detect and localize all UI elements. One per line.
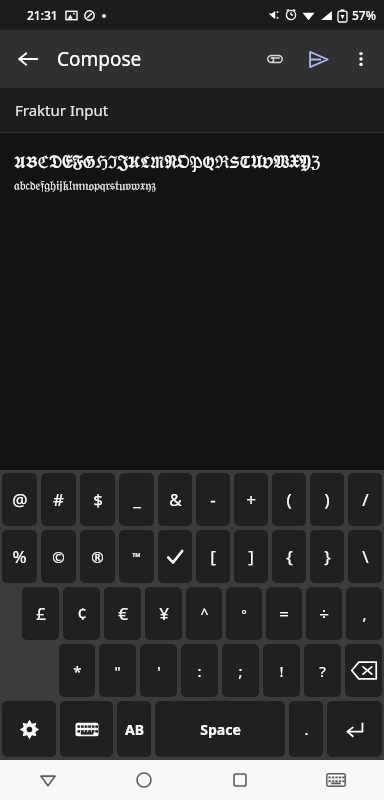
staticText: { bbox=[286, 545, 293, 568]
staticText: ' bbox=[157, 661, 161, 681]
staticText: # bbox=[53, 488, 64, 511]
staticText: 57% bbox=[352, 7, 376, 23]
button[interactable]: [ bbox=[196, 530, 230, 583]
button[interactable]: Send bbox=[296, 37, 340, 81]
button[interactable]: ¢ bbox=[63, 587, 100, 640]
staticText: = bbox=[279, 602, 289, 625]
staticText: ! bbox=[279, 661, 284, 681]
staticText: ] bbox=[248, 545, 254, 568]
button[interactable]: # bbox=[41, 473, 76, 526]
staticText: AB bbox=[125, 720, 144, 739]
button[interactable]: Switch keyboard bbox=[60, 701, 113, 757]
button[interactable]: & bbox=[158, 473, 192, 526]
staticText: : bbox=[197, 661, 202, 681]
staticText: \ bbox=[362, 545, 369, 568]
staticText: £ bbox=[36, 602, 46, 625]
staticText: ^ bbox=[200, 604, 209, 623]
button[interactable]: ) bbox=[310, 473, 344, 526]
staticText: } bbox=[324, 545, 331, 568]
button[interactable]: ¥ bbox=[145, 587, 182, 640]
button[interactable]: @ bbox=[2, 473, 37, 526]
staticText: ÷ bbox=[319, 602, 329, 625]
button[interactable]: ÷ bbox=[306, 587, 342, 640]
staticText: ) bbox=[324, 488, 330, 511]
button[interactable]: ] bbox=[234, 530, 268, 583]
button[interactable]: ° bbox=[226, 587, 262, 640]
staticText: _ bbox=[133, 488, 141, 511]
button[interactable]: ' bbox=[140, 644, 177, 697]
button[interactable]: Enter bbox=[327, 701, 382, 757]
button[interactable]: Attach bbox=[254, 38, 296, 80]
button[interactable]: Back bbox=[8, 39, 48, 79]
button[interactable]: Fraktur Input bbox=[0, 88, 384, 132]
staticText: ( bbox=[286, 488, 292, 511]
button[interactable]: ^ bbox=[186, 587, 222, 640]
button[interactable]: © bbox=[41, 530, 76, 583]
staticText: & bbox=[169, 488, 182, 511]
staticText: 𝔞𝔟𝔠𝔡𝔢𝔣𝔤𝔥𝔦𝔧𝔨𝔩𝔪𝔫𝔬𝔭𝔮𝔯𝔰𝔱𝔲𝔳𝔴𝔵𝔶𝔷 bbox=[14, 180, 156, 193]
button[interactable]: Home bbox=[96, 760, 192, 800]
staticText: Space bbox=[200, 720, 241, 739]
button[interactable]: \ bbox=[348, 530, 382, 583]
button[interactable]: , bbox=[346, 587, 382, 640]
button[interactable]: % bbox=[2, 530, 37, 583]
button[interactable]: : bbox=[181, 644, 218, 697]
button[interactable]: Settings bbox=[2, 701, 56, 757]
staticText: , bbox=[362, 604, 367, 624]
button[interactable]: AB bbox=[117, 701, 151, 757]
button[interactable]: " bbox=[99, 644, 136, 697]
staticText: - bbox=[210, 488, 216, 511]
button[interactable]: { bbox=[272, 530, 306, 583]
staticText: $ bbox=[93, 488, 103, 511]
button[interactable]: Back bbox=[0, 760, 96, 800]
staticText: 21:31 bbox=[27, 7, 58, 23]
button[interactable]: Backspace bbox=[345, 644, 382, 697]
button[interactable]: + bbox=[234, 473, 268, 526]
staticText: / bbox=[362, 488, 369, 511]
staticText: © bbox=[52, 547, 65, 567]
staticText: ™ bbox=[132, 549, 141, 564]
button[interactable]: $ bbox=[80, 473, 115, 526]
button[interactable]: ( bbox=[272, 473, 306, 526]
button[interactable]: / bbox=[348, 473, 382, 526]
button[interactable]: ! bbox=[263, 644, 300, 697]
staticText: . bbox=[304, 719, 309, 739]
staticText: € bbox=[118, 602, 128, 625]
button[interactable]: } bbox=[310, 530, 344, 583]
button[interactable]: ® bbox=[80, 530, 115, 583]
button[interactable]: ™ bbox=[119, 530, 154, 583]
staticText: @ bbox=[12, 488, 28, 511]
button[interactable]: . bbox=[289, 701, 323, 757]
staticText: ¥ bbox=[159, 602, 169, 625]
button[interactable]: = bbox=[266, 587, 302, 640]
button[interactable]: Recents bbox=[192, 760, 288, 800]
staticText: + bbox=[246, 488, 256, 511]
staticText: % bbox=[12, 545, 27, 568]
button[interactable]: More options bbox=[340, 38, 382, 80]
button[interactable]: Check bbox=[158, 530, 192, 583]
button[interactable]: € bbox=[104, 587, 141, 640]
staticText: * bbox=[73, 661, 82, 681]
staticText: ; bbox=[238, 661, 243, 681]
button[interactable]: * bbox=[59, 644, 95, 697]
button[interactable]: £ bbox=[22, 587, 59, 640]
button[interactable]: ; bbox=[222, 644, 259, 697]
staticText: [ bbox=[210, 545, 216, 568]
button[interactable]: ? bbox=[304, 644, 341, 697]
staticText: ° bbox=[241, 605, 247, 623]
staticText: ? bbox=[319, 661, 326, 681]
button[interactable]: Space bbox=[155, 701, 285, 757]
staticText: ¢ bbox=[77, 602, 87, 625]
staticText: " bbox=[114, 661, 121, 681]
button[interactable]: - bbox=[196, 473, 230, 526]
staticText: Fraktur Input bbox=[15, 100, 109, 120]
staticText: Compose bbox=[57, 46, 142, 72]
button[interactable]: _ bbox=[119, 473, 154, 526]
staticText: ® bbox=[91, 547, 104, 567]
staticText: 𝔄𝔅ℭ𝔇𝔈𝔉𝔊ℌℑ𝔍𝔎𝔏𝔐𝔑𝔒𝔓𝔔ℜ𝔖𝔗𝔘𝔙𝔚𝔛𝔜ℨ bbox=[14, 147, 321, 174]
button[interactable]: Change keyboard bbox=[288, 760, 384, 800]
